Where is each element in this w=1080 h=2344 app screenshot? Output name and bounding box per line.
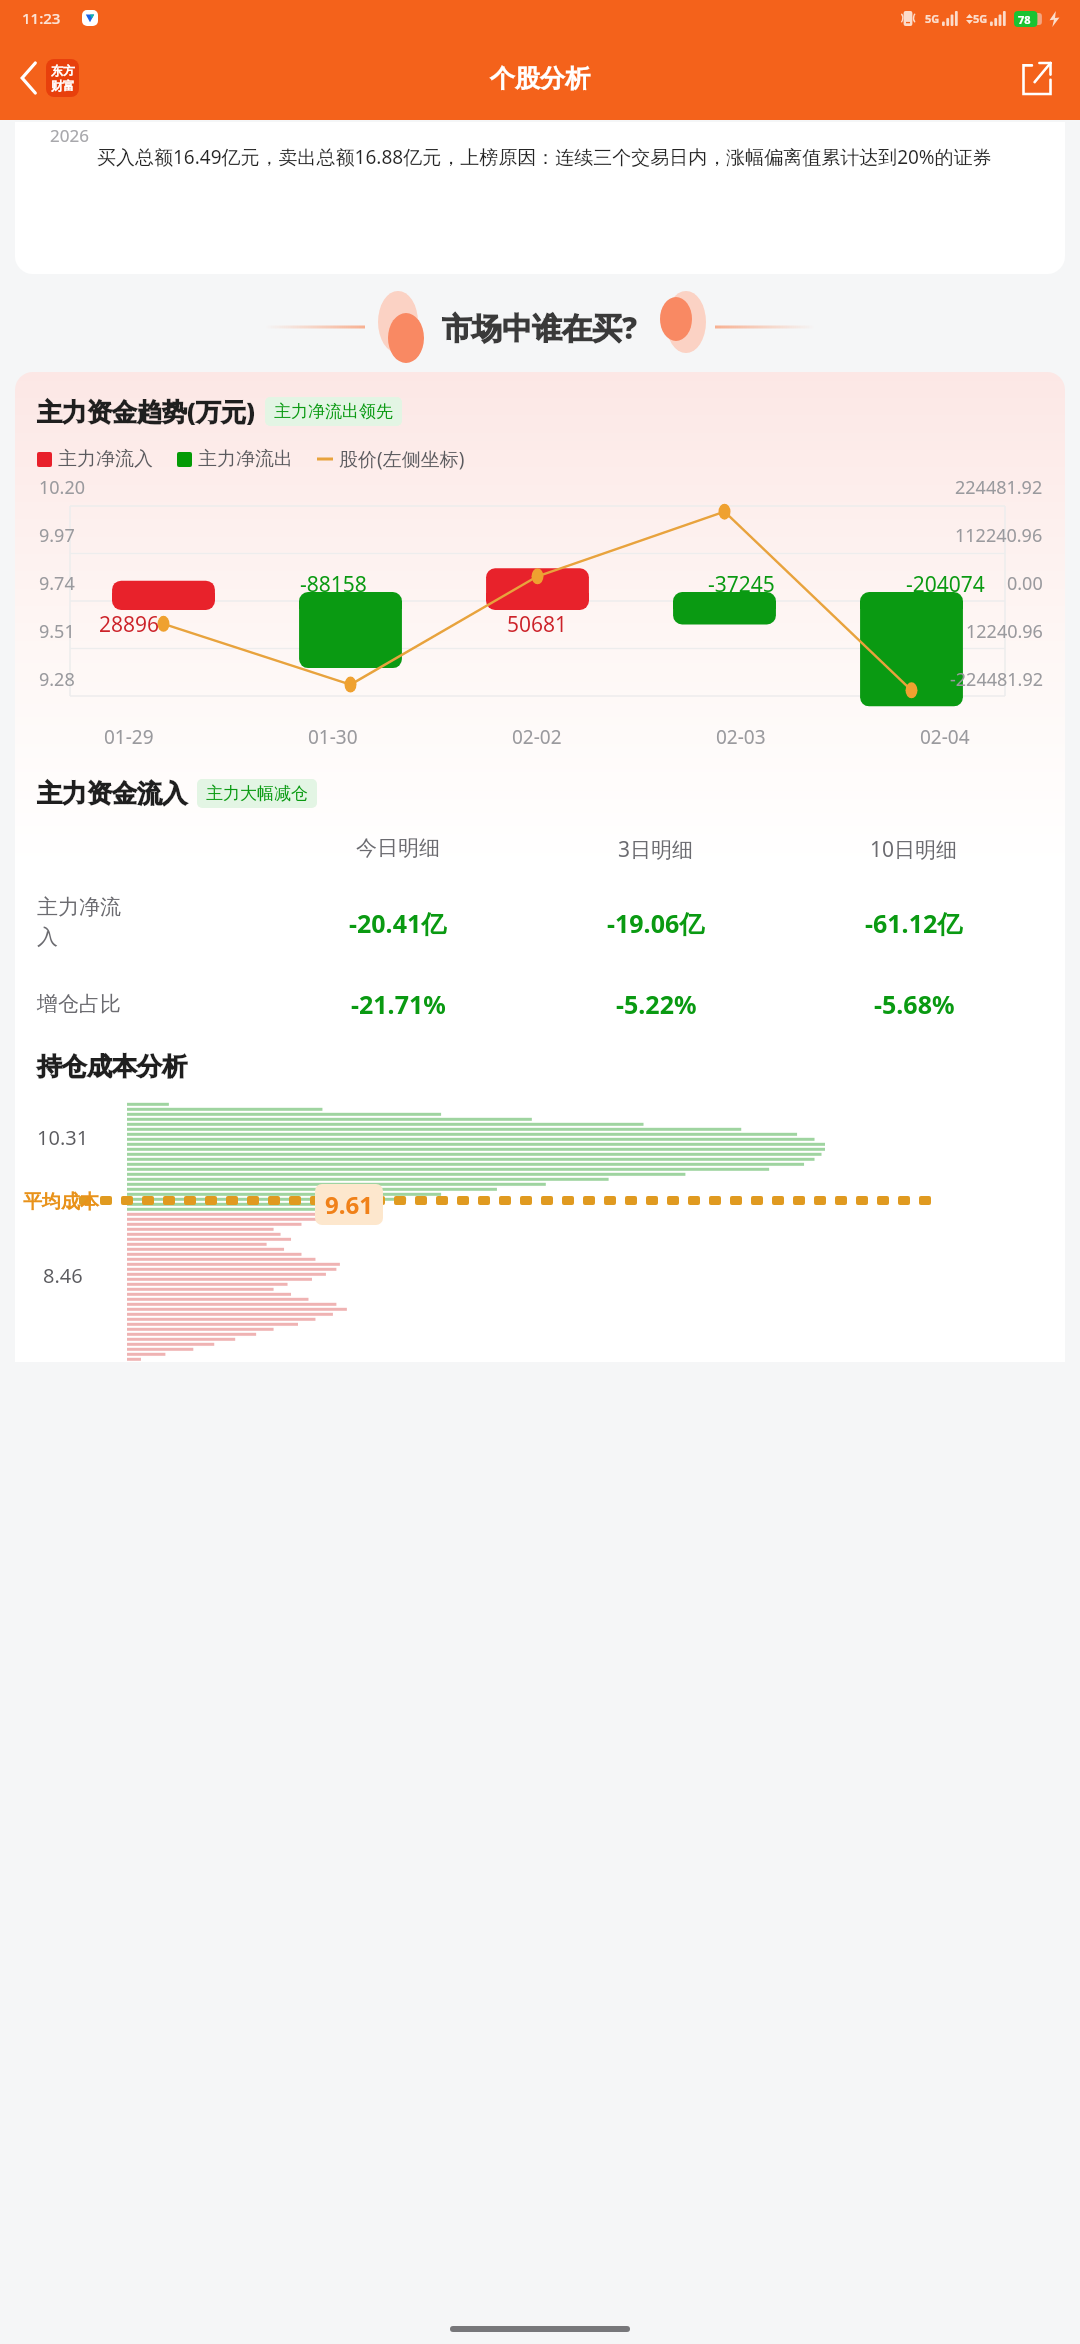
- staticText: 股价(左侧坐标): [339, 446, 465, 472]
- staticText: 主力净流入: [58, 447, 153, 471]
- staticText: 9.74: [39, 571, 75, 596]
- staticText: 8.46: [43, 1262, 83, 1289]
- staticText: 主力大幅减仓: [206, 783, 308, 804]
- button[interactable]: 主力资金趋势(万元): [37, 394, 402, 428]
- staticText: -21.71%: [351, 987, 446, 1021]
- staticText: 主力资金流入: [37, 778, 187, 809]
- staticText: 主力资金趋势(万元): [37, 394, 255, 428]
- staticText: 个股分析: [490, 63, 590, 94]
- staticText: -88158: [300, 570, 367, 599]
- staticText: -37245: [708, 570, 775, 599]
- staticText: -224481.92: [950, 667, 1043, 692]
- staticText: 平均成本: [23, 1190, 99, 1214]
- staticText: 02-04: [920, 724, 970, 750]
- staticText: 9.97: [39, 523, 75, 548]
- staticText: 9.61: [325, 1188, 373, 1221]
- staticText: 10日明细: [870, 835, 958, 864]
- staticText: 01-30: [308, 724, 358, 750]
- staticText: -5.22%: [616, 987, 697, 1021]
- staticText: 2026: [50, 124, 89, 147]
- staticText: 5G: [973, 11, 988, 26]
- staticText: 今日明细: [356, 835, 440, 861]
- staticText: 78: [1018, 12, 1031, 27]
- staticText: 9.51: [39, 619, 75, 644]
- staticText: 主力净流入: [37, 894, 129, 951]
- staticText: 主力净流出: [198, 447, 293, 471]
- staticText: 0.00: [1007, 571, 1043, 596]
- staticText: 10.20: [39, 475, 86, 500]
- staticText: 3日明细: [618, 835, 694, 864]
- staticText: 持仓成本分析: [37, 1051, 187, 1082]
- button[interactable]: 2026: [15, 122, 1065, 274]
- button[interactable]: 主力资金流入: [37, 778, 317, 809]
- staticText: 10.31: [37, 1124, 89, 1151]
- staticText: 12240.96: [966, 619, 1043, 644]
- staticText: 02-02: [512, 724, 562, 750]
- staticText: 11:23: [22, 8, 61, 28]
- staticText: 224481.92: [955, 475, 1043, 500]
- staticText: 买入总额16.49亿元，卖出总额16.88亿元，上榜原因：连续三个交易日内，涨幅…: [97, 144, 992, 170]
- staticText: -204074: [906, 570, 985, 599]
- staticText: 112240.96: [955, 523, 1043, 548]
- staticText: -20.41亿: [349, 906, 447, 940]
- staticText: 50681: [507, 610, 568, 639]
- staticText: 28896: [99, 610, 160, 639]
- staticText: 01-29: [104, 724, 154, 750]
- staticText: 02-03: [716, 724, 766, 750]
- staticText: 主力净流出领先: [274, 401, 393, 422]
- button[interactable]: Back: [14, 53, 85, 103]
- staticText: 增仓占比: [37, 991, 121, 1017]
- staticText: 市场中谁在买?: [442, 307, 638, 348]
- staticText: 9.28: [39, 667, 75, 692]
- staticText: 财富: [51, 78, 75, 93]
- button[interactable]: Share: [1014, 53, 1060, 103]
- staticText: -19.06亿: [607, 906, 705, 940]
- staticText: 东方: [51, 63, 75, 78]
- staticText: -5.68%: [874, 987, 955, 1021]
- staticText: -61.12亿: [865, 906, 963, 940]
- staticText: 5G: [925, 11, 940, 26]
